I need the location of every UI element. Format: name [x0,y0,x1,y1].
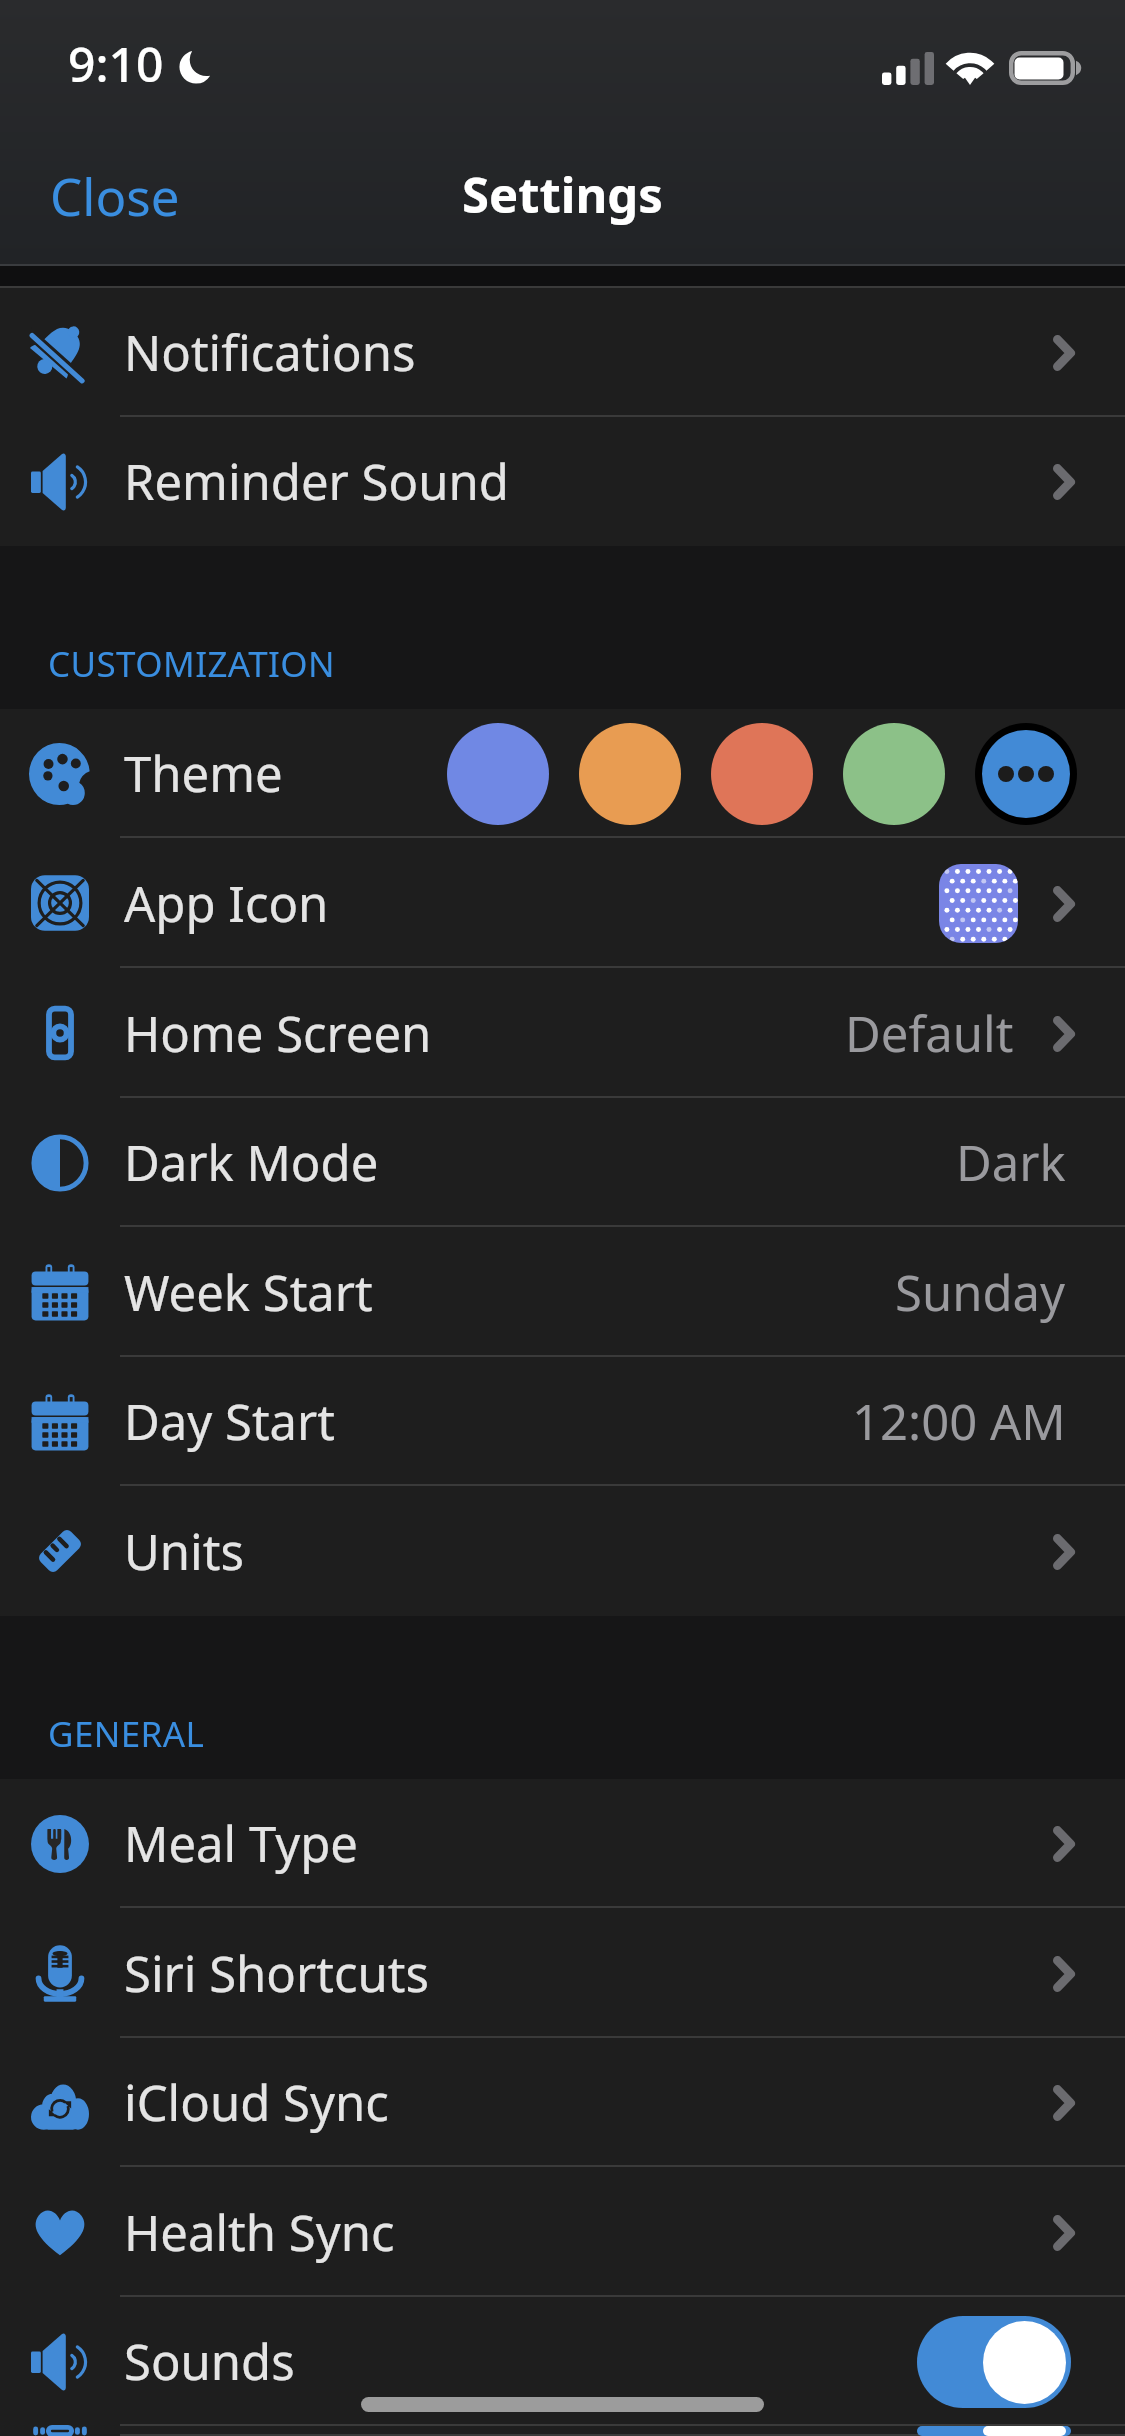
staticText: Sounds [124,2328,295,2395]
staticText: Dark [956,1129,1066,1196]
button[interactable]: More theme colours [982,730,1070,818]
staticText: Close [50,161,180,230]
staticText: Day Start [124,1388,335,1455]
staticText: iCloud Sync [124,2069,389,2136]
button[interactable]: Sounds on [917,2316,1071,2408]
staticText: Dark Mode [124,1129,379,1196]
button[interactable]: Purple theme [447,723,549,825]
staticText: Settings [462,161,663,228]
staticText: Notifications [124,319,416,386]
staticText: Sunday [895,1259,1066,1326]
button[interactable]: Home Screen [0,968,1125,1098]
staticText: Health Sync [124,2199,395,2266]
button[interactable]: iCloud Sync [0,2038,1125,2167]
button[interactable]: Units [0,1486,1125,1616]
button[interactable]: Theme [0,709,1125,838]
staticText: Siri Shortcuts [124,1940,429,2007]
staticText: GENERAL [48,1710,205,1758]
button[interactable]: Orange theme [579,723,681,825]
button[interactable]: Health Sync [0,2167,1125,2297]
staticText: 12:00 AM [852,1388,1066,1455]
staticText: CUSTOMIZATION [48,640,336,688]
staticText: Default [845,1000,1014,1067]
staticText: Home Screen [124,1000,432,1067]
button[interactable]: Siri Shortcuts [0,1908,1125,2038]
staticText: Units [124,1518,244,1585]
staticText: Week Start [124,1259,373,1326]
button[interactable]: Reminder Sound [0,417,1125,546]
staticText: 9:10 [68,31,164,96]
button[interactable]: Notifications [0,288,1125,417]
button[interactable]: Day Start [0,1357,1125,1486]
button[interactable]: Red theme [711,723,813,825]
button[interactable]: Meal Type [0,1779,1125,1908]
button[interactable]: Sounds [0,2297,1125,2426]
staticText: Meal Type [124,1810,358,1877]
button[interactable]: Green theme [843,723,945,825]
staticText: Reminder Sound [124,448,509,515]
button[interactable]: Week Start [0,1227,1125,1357]
button[interactable]: Haptics [0,2426,1125,2436]
button[interactable]: Dark Mode [0,1098,1125,1227]
staticText: Haptics [124,2426,296,2436]
button[interactable]: Close [22,147,208,244]
staticText: App Icon [124,870,329,937]
staticText: Theme [124,740,283,807]
button[interactable]: App Icon [0,838,1125,968]
button[interactable]: Haptics on [917,2426,1071,2436]
